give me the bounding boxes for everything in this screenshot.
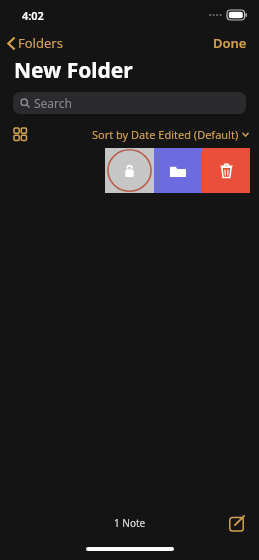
staticText: Sort by Date Edited (Default) xyxy=(92,127,239,142)
staticText: Folders xyxy=(18,34,63,52)
button[interactable]: Move to folder xyxy=(154,148,202,193)
button[interactable]: Folders xyxy=(0,31,71,55)
staticText: Search xyxy=(34,95,72,111)
button[interactable]: Gallery view xyxy=(10,124,31,144)
staticText: Done xyxy=(213,34,247,52)
staticText: New Folder xyxy=(14,56,133,84)
button[interactable]: Lock xyxy=(105,148,154,193)
button[interactable]: Search xyxy=(13,92,246,114)
staticText: 1 Note xyxy=(114,516,146,530)
button[interactable]: Done xyxy=(201,31,259,55)
button[interactable]: Sort by Date Edited (Default) xyxy=(82,125,259,144)
button[interactable]: Delete xyxy=(202,148,250,193)
button[interactable]: New note xyxy=(225,511,249,535)
staticText: 4:02 xyxy=(22,8,44,23)
